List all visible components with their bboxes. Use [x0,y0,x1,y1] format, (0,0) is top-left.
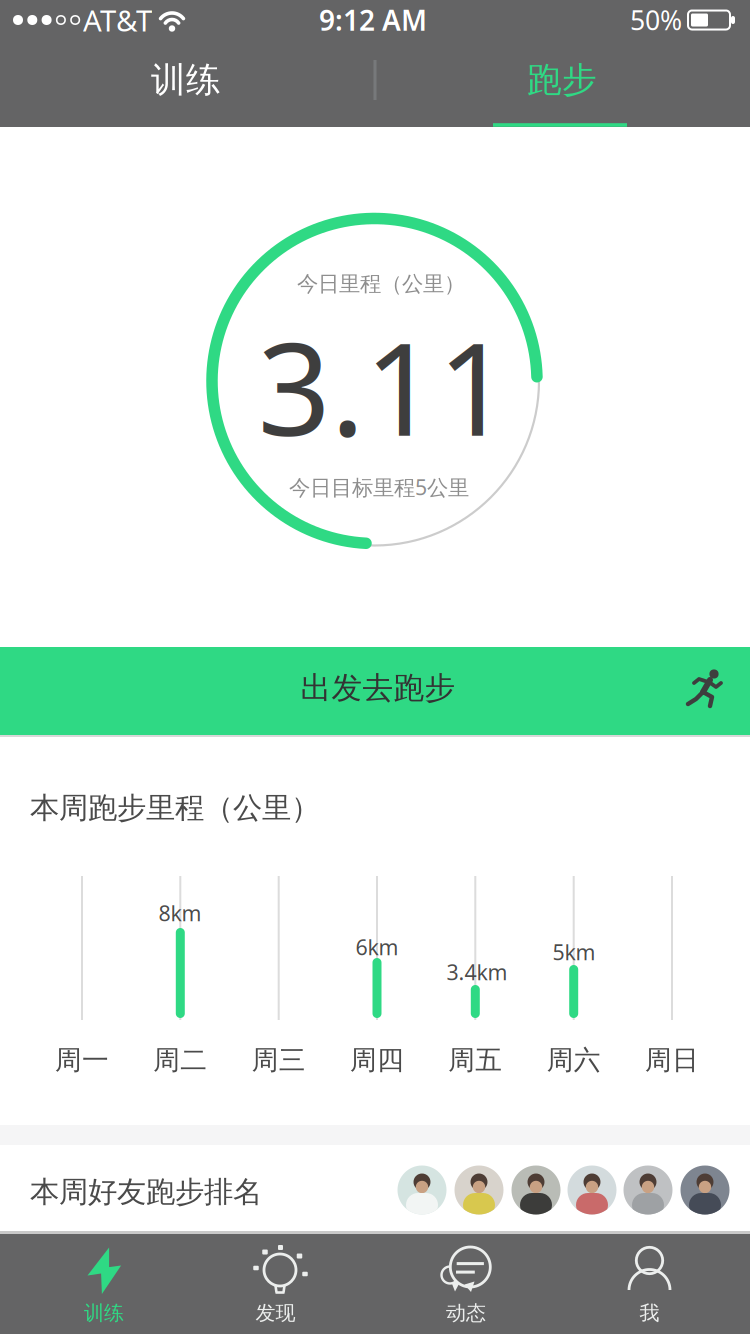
staticText: 周一 [55,1044,109,1076]
staticText: 周四 [350,1044,404,1076]
staticText: 今日里程（公里） [297,271,465,297]
staticText: 5km [552,938,595,966]
staticText: 出发去跑步 [300,669,455,707]
button[interactable]: 出发去跑步 [0,647,750,735]
button[interactable]: 跑步 [402,36,722,123]
staticText: 8km [158,899,201,927]
button[interactable]: 发现 [187,1234,375,1334]
staticText: AT&T [83,0,152,39]
staticText: 训练 [84,1301,124,1325]
staticText: 跑步 [527,59,597,101]
staticText: 周二 [153,1044,207,1076]
staticText: 今日目标里程5公里 [289,473,469,501]
staticText: 我 [639,1301,659,1325]
button[interactable]: 我 [562,1234,750,1334]
staticText: 9:12 AM [319,1,427,39]
staticText: 3.11 [257,301,510,471]
staticText: 6km [355,933,398,961]
staticText: 周日 [645,1044,699,1076]
staticText: 周六 [547,1044,601,1076]
button[interactable]: 本周好友跑步排名 [0,1145,750,1231]
button[interactable]: 训练 [0,1234,187,1334]
staticText: 发现 [255,1301,295,1325]
staticText: 本周跑步里程（公里） [30,790,320,826]
staticText: 周三 [252,1044,306,1076]
staticText: 3.4km [446,958,507,986]
staticText: 周五 [448,1044,502,1076]
staticText: 50% [630,2,682,38]
staticText: 动态 [446,1301,486,1325]
staticText: 本周好友跑步排名 [30,1174,262,1210]
staticText: 训练 [151,59,221,101]
button[interactable]: 训练 [26,36,346,123]
button[interactable]: 动态 [375,1234,562,1334]
